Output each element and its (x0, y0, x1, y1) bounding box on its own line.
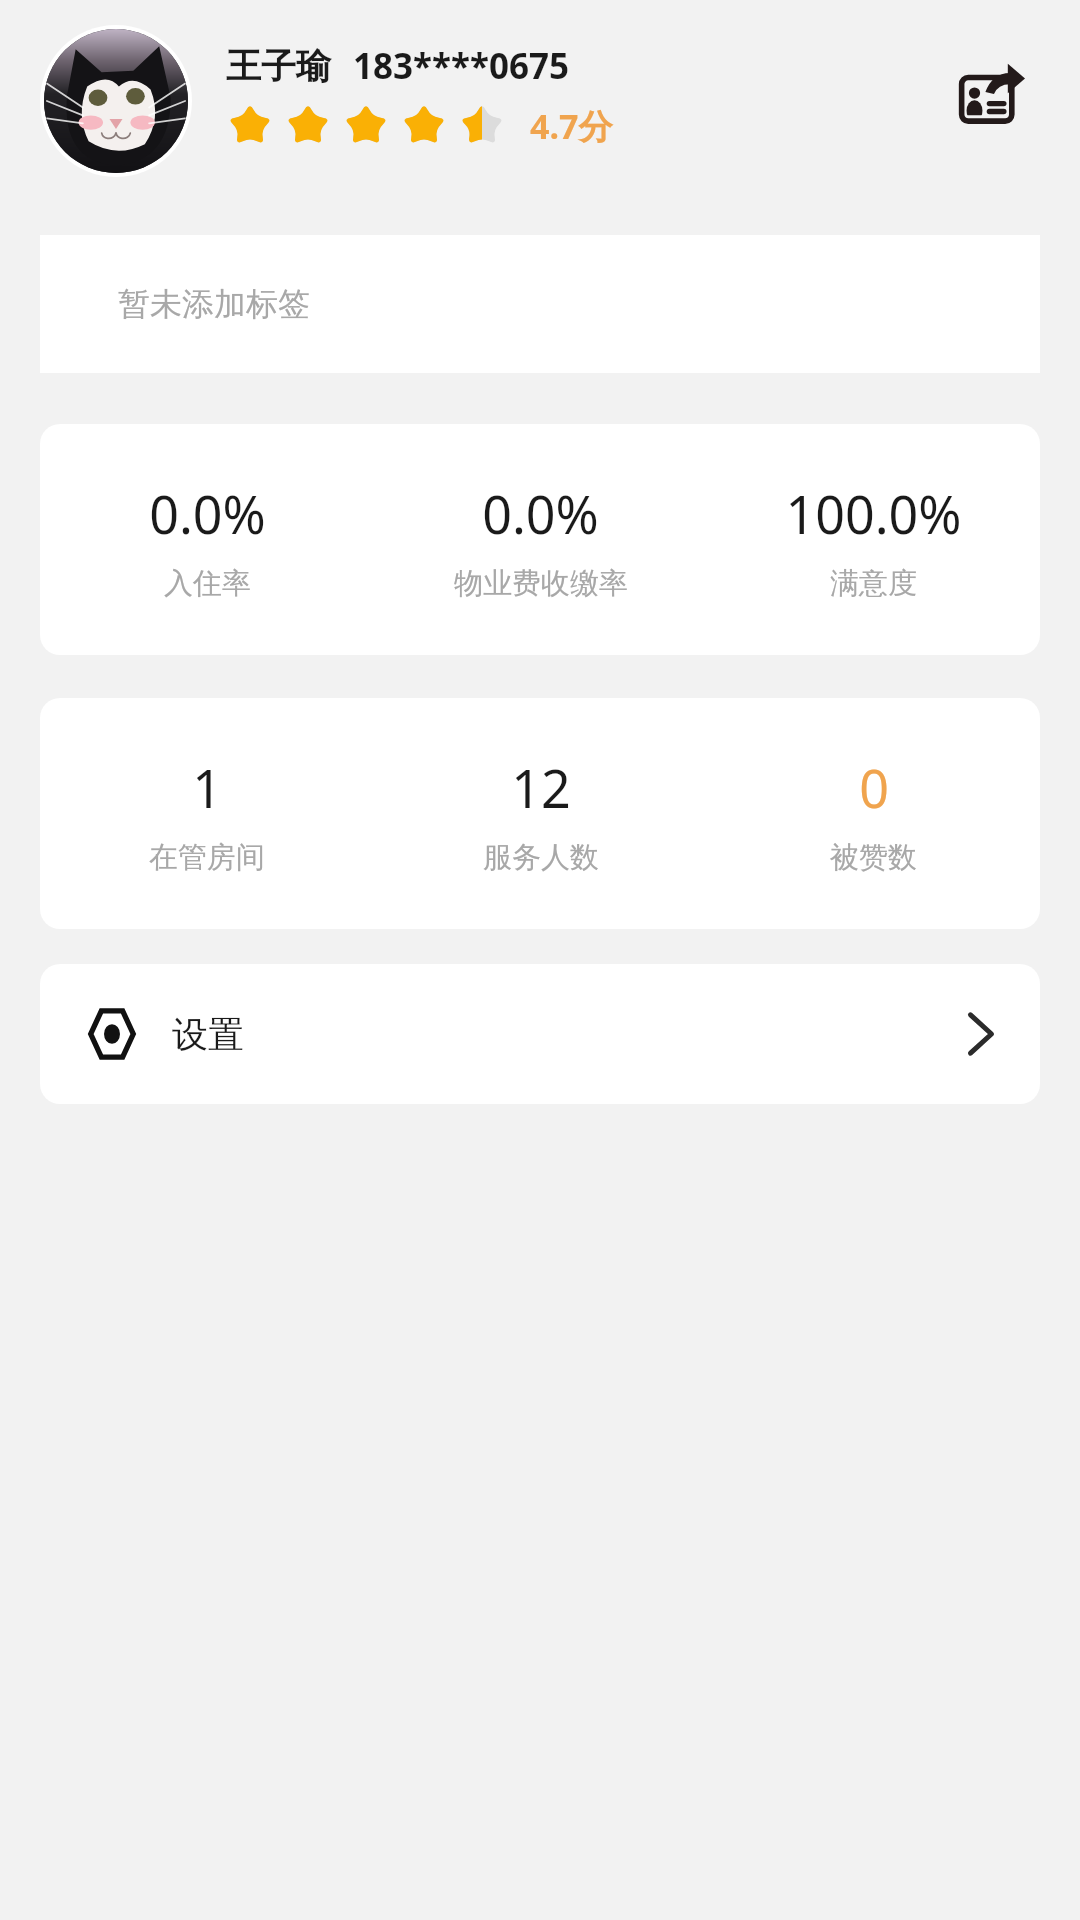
staticText: 入住率 (164, 565, 251, 602)
button[interactable]: 暂未添加标签 (40, 235, 1040, 373)
button[interactable]: 1 (40, 698, 374, 929)
button[interactable]: 0.0% (40, 424, 374, 655)
staticText: 4.7分 (530, 103, 613, 149)
button[interactable]: 0 (707, 698, 1040, 929)
staticText: 被赞数 (830, 839, 917, 876)
staticText: 满意度 (830, 565, 917, 602)
staticText: 1 (192, 752, 222, 823)
staticText: 183****0675 (353, 42, 570, 90)
staticText: 设置 (172, 1012, 244, 1057)
staticText: 王子瑜 (226, 44, 331, 88)
staticText: 100.0% (785, 478, 962, 549)
staticText: 0.0% (149, 478, 266, 549)
button[interactable]: Share contact card (956, 60, 1028, 132)
staticText: 服务人数 (483, 839, 599, 876)
staticText: 物业费收缴率 (454, 565, 628, 602)
staticText: 0.0% (482, 478, 599, 549)
button[interactable]: 100.0% (707, 424, 1040, 655)
staticText: 0 (859, 752, 889, 823)
button[interactable]: 12 (374, 698, 707, 929)
button[interactable]: Profile photo (40, 25, 192, 177)
staticText: 12 (511, 752, 571, 823)
staticText: 暂未添加标签 (118, 284, 310, 324)
button[interactable]: 0.0% (374, 424, 707, 655)
staticText: 在管房间 (149, 839, 265, 876)
button[interactable]: 设置 (40, 964, 1040, 1104)
